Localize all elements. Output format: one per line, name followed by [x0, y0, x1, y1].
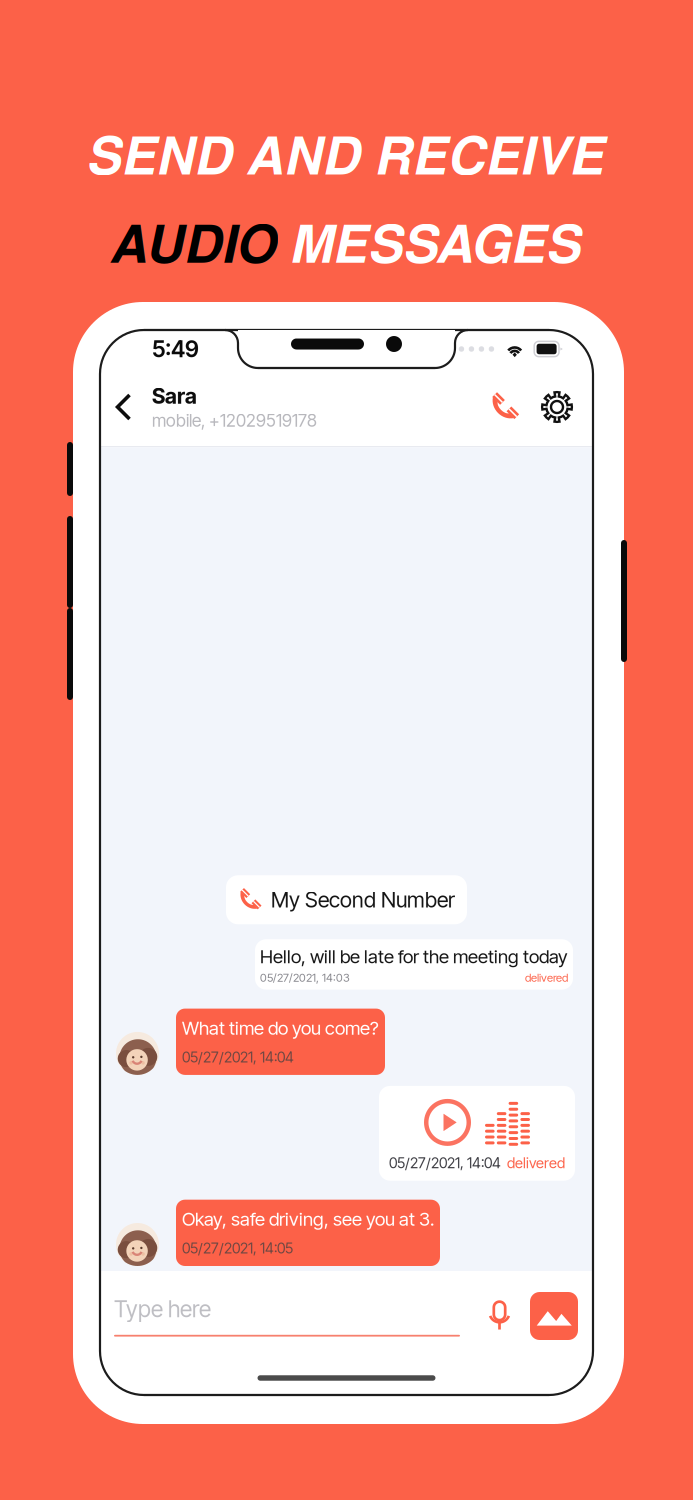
button[interactable]: Back: [100, 379, 152, 435]
button[interactable]: Settings: [530, 381, 593, 433]
staticText: Sara: [152, 383, 197, 409]
button[interactable]: Record audio: [474, 1291, 525, 1340]
staticText: Type here: [114, 1295, 211, 1323]
staticText: AUDIO: [111, 204, 291, 279]
staticText: delivered: [507, 1154, 565, 1172]
staticText: mobile, +12029519178: [152, 410, 317, 431]
staticText: MESSAGES: [291, 204, 582, 279]
staticText: 05/27/2021, 14:05: [182, 1239, 293, 1257]
button[interactable]: Send photo: [525, 1292, 578, 1340]
staticText: 05/27/2021, 14:04: [182, 1048, 294, 1066]
staticText: Hello, will be late for the meeting toda…: [260, 945, 568, 968]
staticText: Okay, safe driving, see you at 3.: [182, 1208, 434, 1230]
staticText: delivered: [525, 971, 568, 985]
button[interactable]: Call: [478, 380, 530, 434]
staticText: 5:49: [152, 335, 199, 363]
staticText: My Second Number: [271, 887, 455, 913]
staticText: What time do you come?: [182, 1017, 379, 1039]
staticText: SEND AND RECEIVE: [87, 116, 605, 190]
staticText: 05/27/2021, 14:04: [389, 1154, 501, 1172]
staticText: 05/27/2021, 14:03: [260, 971, 350, 985]
